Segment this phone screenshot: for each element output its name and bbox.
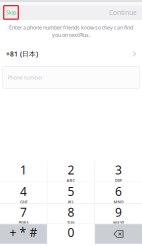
staticText: 9: [115, 204, 122, 220]
button[interactable]: +81 (日本): [0, 47, 142, 60]
staticText: Enter a phone number friends know so the…: [9, 24, 133, 31]
button[interactable]: 4: [0, 182, 47, 203]
staticText: WXYZ: [113, 220, 124, 225]
staticText: +81 (日本): [6, 49, 38, 58]
staticText: 5: [67, 183, 74, 199]
staticText: 4: [20, 183, 27, 199]
button[interactable]: 7: [0, 204, 47, 224]
button[interactable]: 5: [47, 182, 94, 203]
button[interactable]: 0: [47, 224, 94, 244]
staticText: 3: [115, 162, 122, 178]
staticText: 0: [67, 224, 74, 240]
button[interactable]: Continue: [106, 5, 140, 20]
staticText: + * #: [9, 224, 37, 240]
staticText: 8: [67, 204, 74, 220]
staticText: Skip: [6, 9, 16, 16]
button[interactable]: 3: [95, 161, 142, 182]
staticText: 6: [115, 183, 122, 199]
button[interactable]: 1: [0, 161, 47, 182]
button[interactable]: 9: [95, 204, 142, 224]
staticText: 7: [20, 204, 27, 220]
staticText: Phone number: [7, 74, 42, 81]
staticText: GHI: [20, 199, 27, 204]
button[interactable]: + * #: [0, 224, 47, 244]
staticText: 2: [67, 162, 74, 178]
staticText: PQRS: [18, 220, 28, 225]
staticText: TUV: [67, 220, 75, 225]
button[interactable]: Skip: [0, 6, 18, 19]
button[interactable]: [95, 224, 142, 244]
button[interactable]: 6: [95, 182, 142, 203]
button[interactable]: 8: [47, 204, 94, 224]
staticText: Continue: [109, 8, 137, 17]
staticText: you on textPlus.: [52, 31, 90, 38]
staticText: DEF: [115, 178, 122, 183]
staticText: ABC: [66, 178, 75, 183]
staticText: JKL: [68, 199, 74, 204]
button[interactable]: 2: [47, 161, 94, 182]
staticText: 1: [20, 162, 27, 178]
staticText: MNO: [113, 199, 123, 204]
